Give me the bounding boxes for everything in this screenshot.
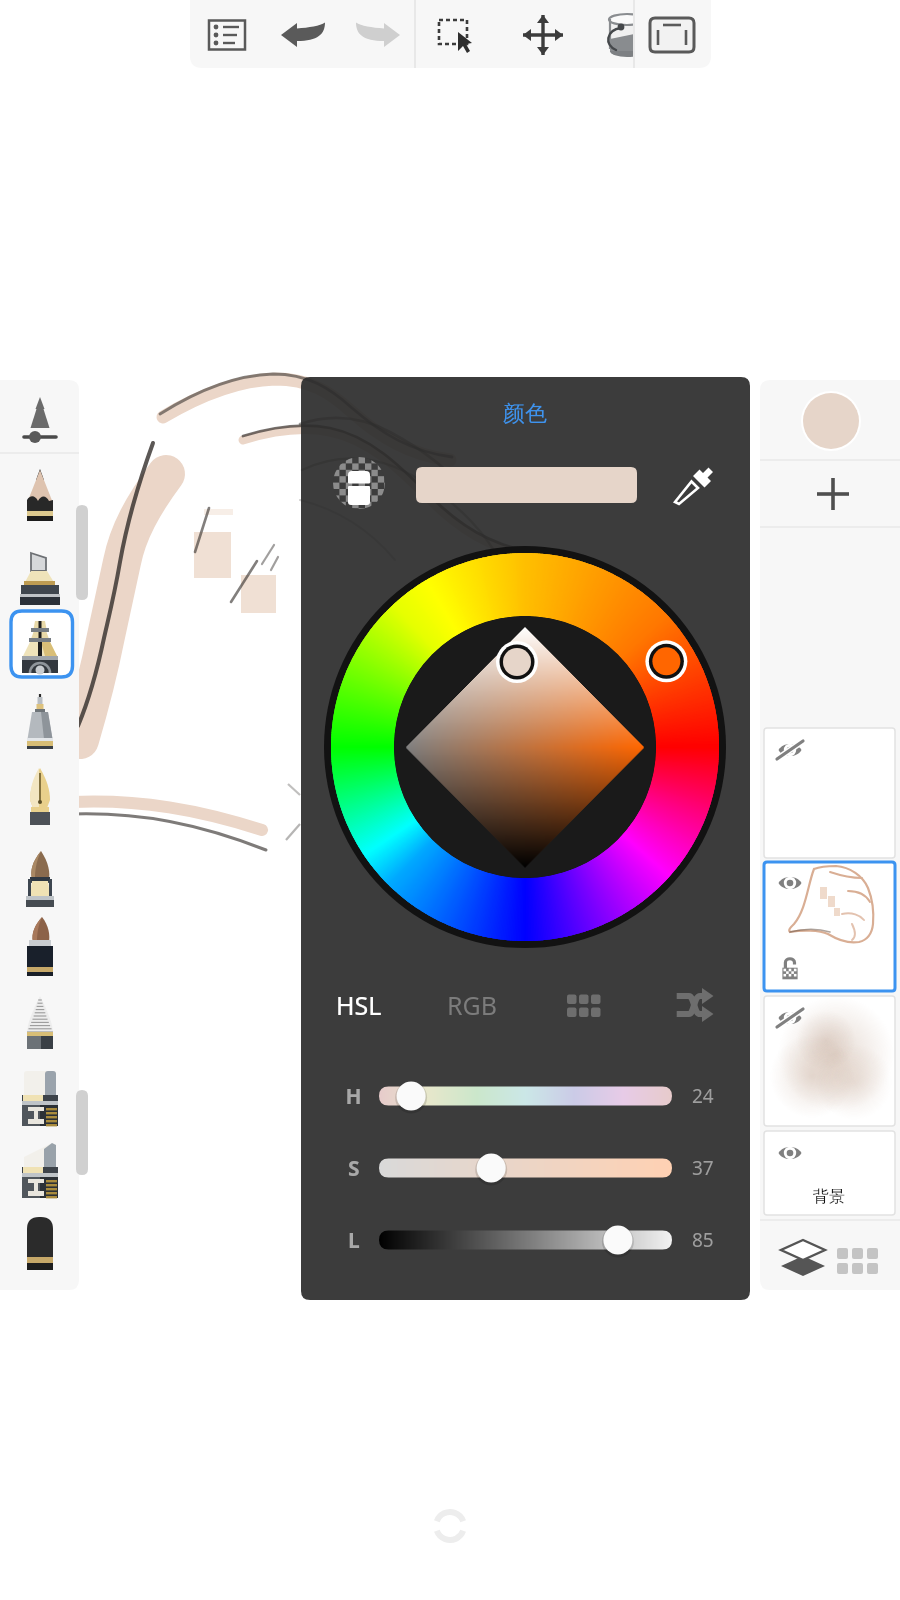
button[interactable]: Menu [190,0,266,68]
button[interactable]: Opacity [333,457,385,509]
button[interactable]: Transform [497,0,577,68]
button[interactable]: Brush 5 [0,758,79,830]
button[interactable]: Palette [557,982,609,1028]
button[interactable]: Hue [340,1078,680,1116]
button[interactable]: Current colour [760,380,900,460]
button[interactable]: Brush 6 [0,836,79,908]
button[interactable]: Brush 8 [0,984,79,1056]
button[interactable]: Brush 4 [0,684,79,756]
button[interactable]: Brush 10 [0,1134,79,1206]
button[interactable]: Brush 1 [0,460,79,532]
button[interactable]: Pick colour from canvas [666,457,718,509]
button[interactable]: Canvas [634,0,711,68]
button[interactable]: Background layer [764,1131,895,1215]
button[interactable]: Randomise colour [669,982,721,1028]
button[interactable]: Brush 7 [0,910,79,982]
button[interactable]: Fill [577,0,634,68]
button[interactable]: RGB [441,982,501,1028]
button[interactable]: Select [415,0,497,68]
button[interactable]: Brush 3 [0,611,79,683]
button[interactable]: Blend mode [775,1232,831,1284]
button[interactable]: Saturation [340,1150,680,1188]
button[interactable]: Layer grid [831,1232,887,1284]
button[interactable]: Add layer [760,461,900,527]
button[interactable]: Brush size [0,380,79,453]
button[interactable]: Undo [266,0,340,68]
button[interactable]: HSL [330,982,390,1028]
button[interactable]: Layer 1 [764,996,895,1126]
button[interactable]: Layer 2 [764,862,895,991]
button[interactable]: Lightness [340,1222,680,1260]
button[interactable]: Brush 11 [0,1207,79,1279]
button[interactable]: Redo [340,0,415,68]
button[interactable]: Brush 2 [0,537,79,609]
button[interactable]: Brush 9 [0,1060,79,1132]
button[interactable]: Layer 3 [764,728,895,858]
button[interactable]: Current colour preview [416,465,637,503]
